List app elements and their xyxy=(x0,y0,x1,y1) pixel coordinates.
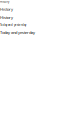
staticText: History xyxy=(0,15,13,20)
staticText: Today and yesterday xyxy=(0,30,35,35)
staticText: History xyxy=(0,0,9,3)
staticText: History xyxy=(0,6,13,12)
staticText: Today and yesterday xyxy=(0,23,26,27)
